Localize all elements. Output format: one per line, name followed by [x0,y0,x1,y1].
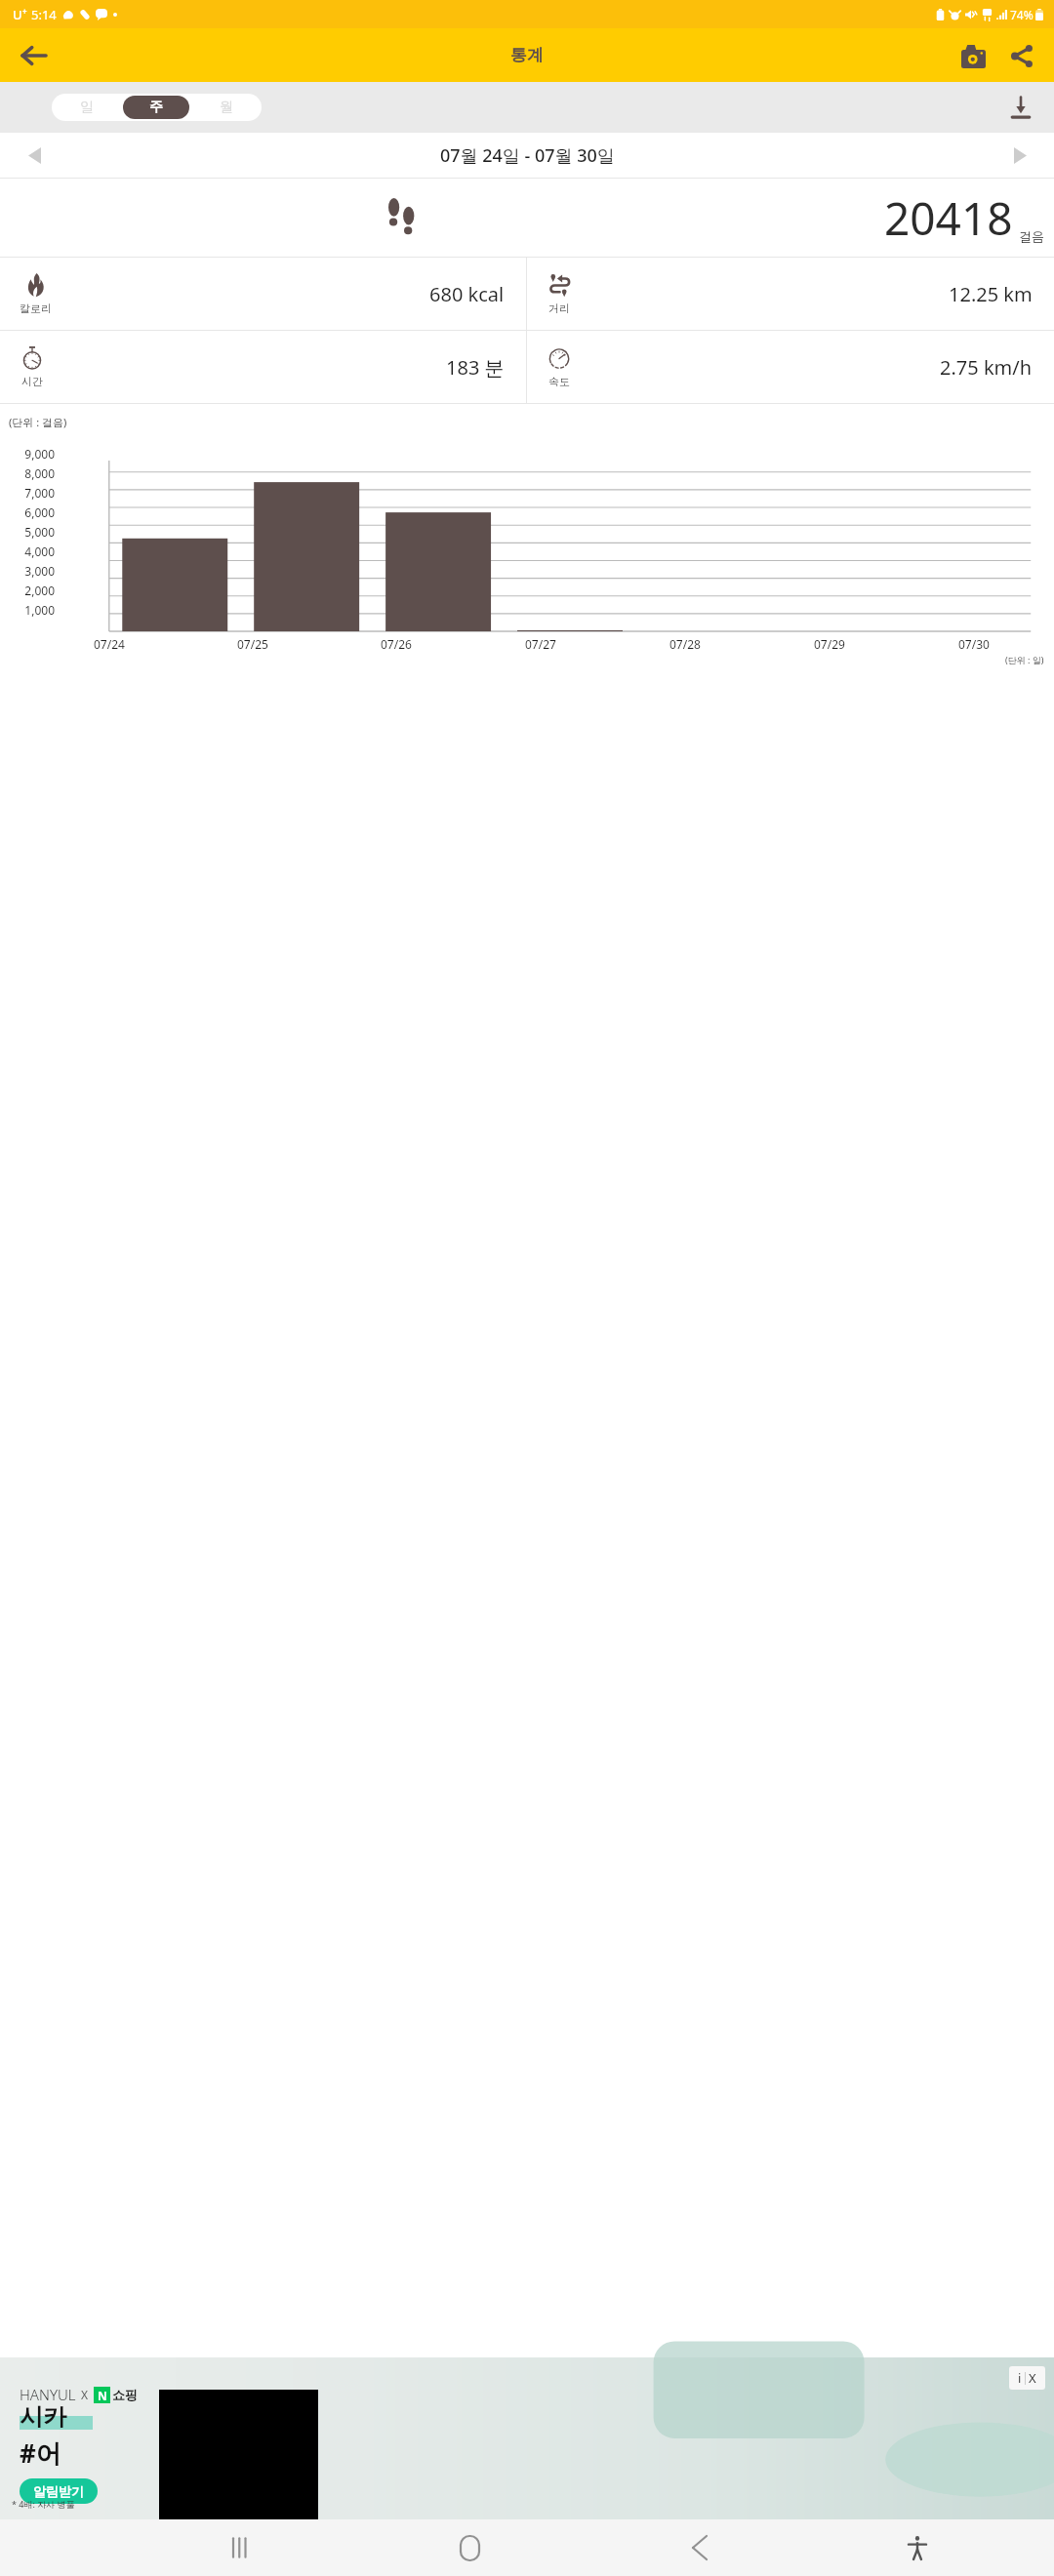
staticText: 07/28 [669,636,701,652]
button[interactable]: 속도 [527,331,1054,403]
staticText: 2,000 [0,583,55,598]
button[interactable]: Download [999,86,1042,129]
staticText: U [13,6,22,23]
staticText: 시카 [20,2402,66,2432]
staticText: (단위 : 일) [1005,654,1044,665]
staticText: 5,000 [0,524,55,540]
staticText: 통계 [510,45,544,65]
button[interactable]: Accessibility [814,2519,1020,2576]
staticText: X [1029,2369,1036,2387]
staticText: i [1018,2369,1022,2387]
staticText: 속도 [548,375,570,388]
button[interactable]: Recent apps [126,2519,355,2576]
button[interactable]: Camera [949,31,997,80]
staticText: (단위 : 걸음) [9,415,67,429]
button[interactable]: Back [8,30,59,81]
staticText: 07/29 [814,636,845,652]
staticText: 12.25 km [949,281,1033,307]
staticText: 2.75 km/h [940,354,1033,381]
staticText: 일 [80,99,94,116]
button[interactable]: 월 [193,96,260,119]
staticText: X [81,2387,89,2402]
staticText: 07/27 [525,636,556,652]
button[interactable]: 주 [123,96,189,119]
staticText: 74% [1010,7,1034,22]
staticText: 걸음 [1019,228,1044,244]
staticText: #어 [20,2435,61,2471]
staticText: + [22,6,27,17]
button[interactable]: Next week [1003,139,1036,172]
button[interactable]: Home [355,2519,585,2576]
button[interactable]: Back [585,2519,814,2576]
button[interactable]: Close ad [1026,2369,1039,2387]
staticText: N [98,2388,107,2403]
button[interactable]: 칼로리 [0,258,526,330]
button[interactable]: Ad info [1015,2369,1025,2387]
staticText: 주 [149,99,163,116]
staticText: HANYUL [20,2385,76,2404]
button[interactable]: 시간 [0,331,526,403]
staticText: 거리 [548,302,570,315]
staticText: 6,000 [0,504,55,520]
button[interactable]: Share [997,31,1046,80]
staticText: 9,000 [0,446,55,462]
staticText: 5:14 [31,6,57,23]
staticText: 20418 [884,187,1013,249]
staticText: 07/30 [958,636,990,652]
staticText: 07/25 [237,636,268,652]
button[interactable]: HANYUL [0,2357,1054,2519]
staticText: 7,000 [0,485,55,501]
staticText: 07월 24일 - 07월 30일 [440,143,615,168]
staticText: 3,000 [0,563,55,579]
button[interactable]: 거리 [527,258,1054,330]
staticText: 07/26 [381,636,412,652]
staticText: 칼로리 [20,302,52,315]
button[interactable]: Previous week [18,139,51,172]
staticText: 4,000 [0,543,55,559]
staticText: 알림받기 [33,2483,84,2499]
button[interactable]: 알림받기 [33,2483,84,2499]
staticText: 07/24 [94,636,125,652]
staticText: 8,000 [0,465,55,481]
staticText: 월 [220,99,233,116]
staticText: * 4배: 자사 병풀 [12,2498,75,2510]
staticText: 183 분 [446,354,505,381]
staticText: 쇼핑 [112,2387,138,2402]
staticText: 1,000 [0,602,55,618]
staticText: 시간 [21,375,43,388]
staticText: 680 kcal [429,281,505,307]
button[interactable]: 일 [54,96,119,119]
